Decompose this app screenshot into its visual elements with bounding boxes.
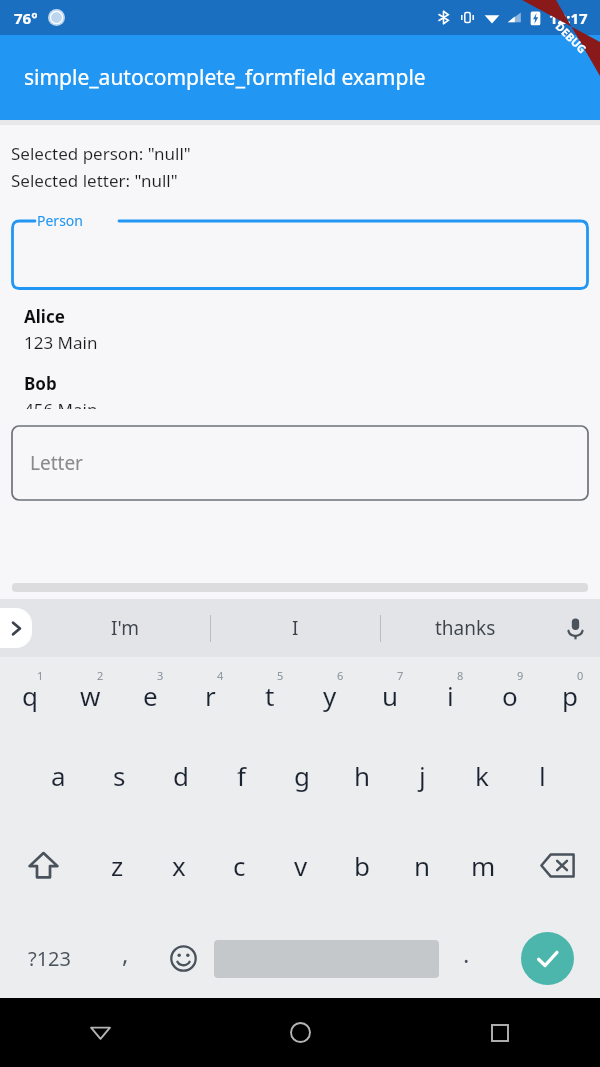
staticText: c [233, 848, 246, 883]
button[interactable]: Shift [0, 831, 87, 899]
staticText: 76° [14, 8, 38, 28]
button[interactable]: v [270, 831, 331, 899]
staticText: d [173, 758, 189, 793]
staticText: i [447, 678, 454, 713]
staticText: z [111, 848, 124, 883]
button[interactable]: 6 [300, 665, 360, 743]
staticText: 12:17 [549, 8, 588, 28]
button[interactable]: Person [11, 212, 589, 290]
staticText: 7 [397, 668, 404, 683]
button[interactable]: x [148, 831, 209, 899]
staticText: 1 [37, 668, 44, 683]
staticText: l [539, 758, 546, 793]
button[interactable]: 0 [540, 665, 600, 743]
button[interactable]: thanks [381, 599, 550, 657]
button[interactable]: j [392, 743, 452, 831]
staticText: 2 [97, 668, 104, 683]
button[interactable]: Expand toolbar [0, 608, 32, 648]
button[interactable]: l [512, 743, 572, 831]
staticText: n [414, 848, 431, 883]
staticText: h [354, 758, 371, 793]
button[interactable]: b [331, 831, 392, 899]
button[interactable]: g [272, 743, 332, 831]
button[interactable]: z [87, 831, 148, 899]
staticText: r [205, 678, 216, 713]
button[interactable]: c [209, 831, 270, 899]
staticText: . [463, 937, 470, 970]
staticText: y [323, 678, 337, 713]
staticText: thanks [435, 615, 496, 641]
staticText: w [80, 678, 101, 713]
button[interactable]: s [89, 743, 150, 831]
button[interactable]: 2 [60, 665, 120, 743]
button[interactable]: . [439, 919, 494, 998]
button[interactable]: 7 [360, 665, 420, 743]
button[interactable]: n [392, 831, 453, 899]
button[interactable]: I [211, 599, 380, 657]
button[interactable]: Voice input [550, 603, 600, 653]
button[interactable]: ?123 [0, 919, 98, 998]
staticText: 123 Main [24, 331, 98, 354]
button[interactable] [214, 919, 439, 998]
staticText: v [294, 848, 308, 883]
staticText: o [502, 678, 518, 713]
staticText: Person [37, 211, 83, 230]
staticText: 456 Main [24, 398, 98, 409]
button[interactable]: 9 [480, 665, 540, 743]
staticText: Selected letter: "null" [11, 169, 178, 192]
staticText: m [471, 848, 496, 883]
button[interactable]: m [453, 831, 514, 899]
button[interactable]: d [150, 743, 211, 831]
button[interactable]: Back [0, 998, 200, 1067]
staticText: Letter [30, 450, 83, 476]
staticText: simple_autocomplete_formfield example [24, 63, 426, 92]
staticText: Bob [24, 372, 57, 395]
button[interactable]: h [332, 743, 392, 831]
staticText: j [419, 758, 426, 793]
button[interactable]: 8 [420, 665, 480, 743]
staticText: 5 [277, 668, 284, 683]
staticText: I [292, 615, 299, 641]
staticText: f [237, 758, 246, 793]
button[interactable]: Home [200, 998, 400, 1067]
staticText: g [294, 758, 310, 793]
staticText: a [51, 758, 66, 793]
staticText: t [265, 678, 275, 713]
button[interactable]: 1 [0, 665, 60, 743]
button[interactable]: , [98, 919, 153, 998]
staticText: 3 [157, 668, 164, 683]
button[interactable]: Emoji [153, 919, 214, 998]
staticText: 8 [457, 668, 464, 683]
button[interactable]: Enter [494, 919, 600, 998]
staticText: I'm [111, 615, 139, 641]
staticText: s [113, 758, 126, 793]
button[interactable]: 5 [240, 665, 300, 743]
staticText: b [354, 848, 370, 883]
staticText: k [475, 758, 489, 793]
button[interactable]: I'm [40, 599, 210, 657]
button[interactable]: k [452, 743, 512, 831]
button[interactable]: 4 [180, 665, 240, 743]
button[interactable]: a [28, 743, 89, 831]
button[interactable]: Letter [11, 425, 589, 501]
button[interactable]: Backspace [514, 831, 600, 899]
staticText: 4 [217, 668, 224, 683]
staticText: Selected person: "null" [11, 142, 191, 165]
staticText: q [22, 678, 38, 713]
button[interactable]: 3 [120, 665, 180, 743]
staticText: p [562, 678, 578, 713]
staticText: , [122, 937, 129, 970]
staticText: 0 [577, 668, 584, 683]
staticText: DEBUG [553, 19, 590, 56]
staticText: u [382, 678, 399, 713]
button[interactable]: Recents [400, 998, 600, 1067]
staticText: ?123 [28, 945, 71, 972]
button[interactable]: f [211, 743, 272, 831]
staticText: x [172, 848, 186, 883]
staticText: Alice [24, 305, 65, 328]
staticText: 9 [517, 668, 524, 683]
staticText: e [143, 678, 158, 713]
staticText: 6 [337, 668, 344, 683]
